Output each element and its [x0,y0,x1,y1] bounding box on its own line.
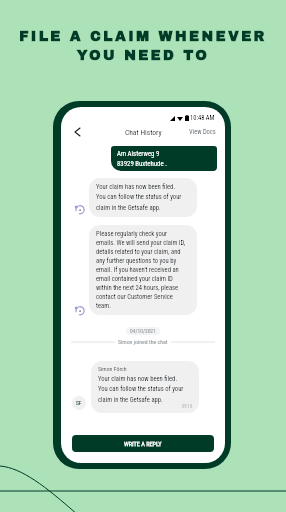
button[interactable]: Your claim has now been filed. You can f… [89,178,197,217]
staticText: View Docs [189,128,216,136]
staticText: Your claim has now been filed. You can f… [96,183,182,212]
staticText: 04/10/2021 [130,328,156,334]
button[interactable]: View Docs [189,128,216,136]
staticText: Simon joined the chat [118,339,168,346]
staticText: Your claim has now been filed. You can f… [98,375,184,404]
staticText: FILE A CLAIM WHENEVER YOU NEED TO [19,29,267,63]
staticText: Am Alsterweg 9 83929 Buxtehude . [117,150,167,167]
staticText: Simon Förch [98,366,127,373]
button[interactable]: Back [67,122,87,142]
staticText: Please regularly check your emails. We w… [96,230,186,310]
button[interactable]: Am Alsterweg 9 83929 Buxtehude . [111,146,217,171]
staticText: SF [76,400,82,406]
button[interactable]: Simon Förch [91,361,199,413]
staticText: 10:48 AM [190,114,215,122]
staticText: 09:10 [182,404,193,409]
staticText: WRITE A REPLY [124,440,162,447]
button[interactable]: Please regularly check your emails. We w… [89,225,197,315]
button[interactable]: WRITE A REPLY [72,435,214,452]
staticText: Chat History [125,128,162,137]
